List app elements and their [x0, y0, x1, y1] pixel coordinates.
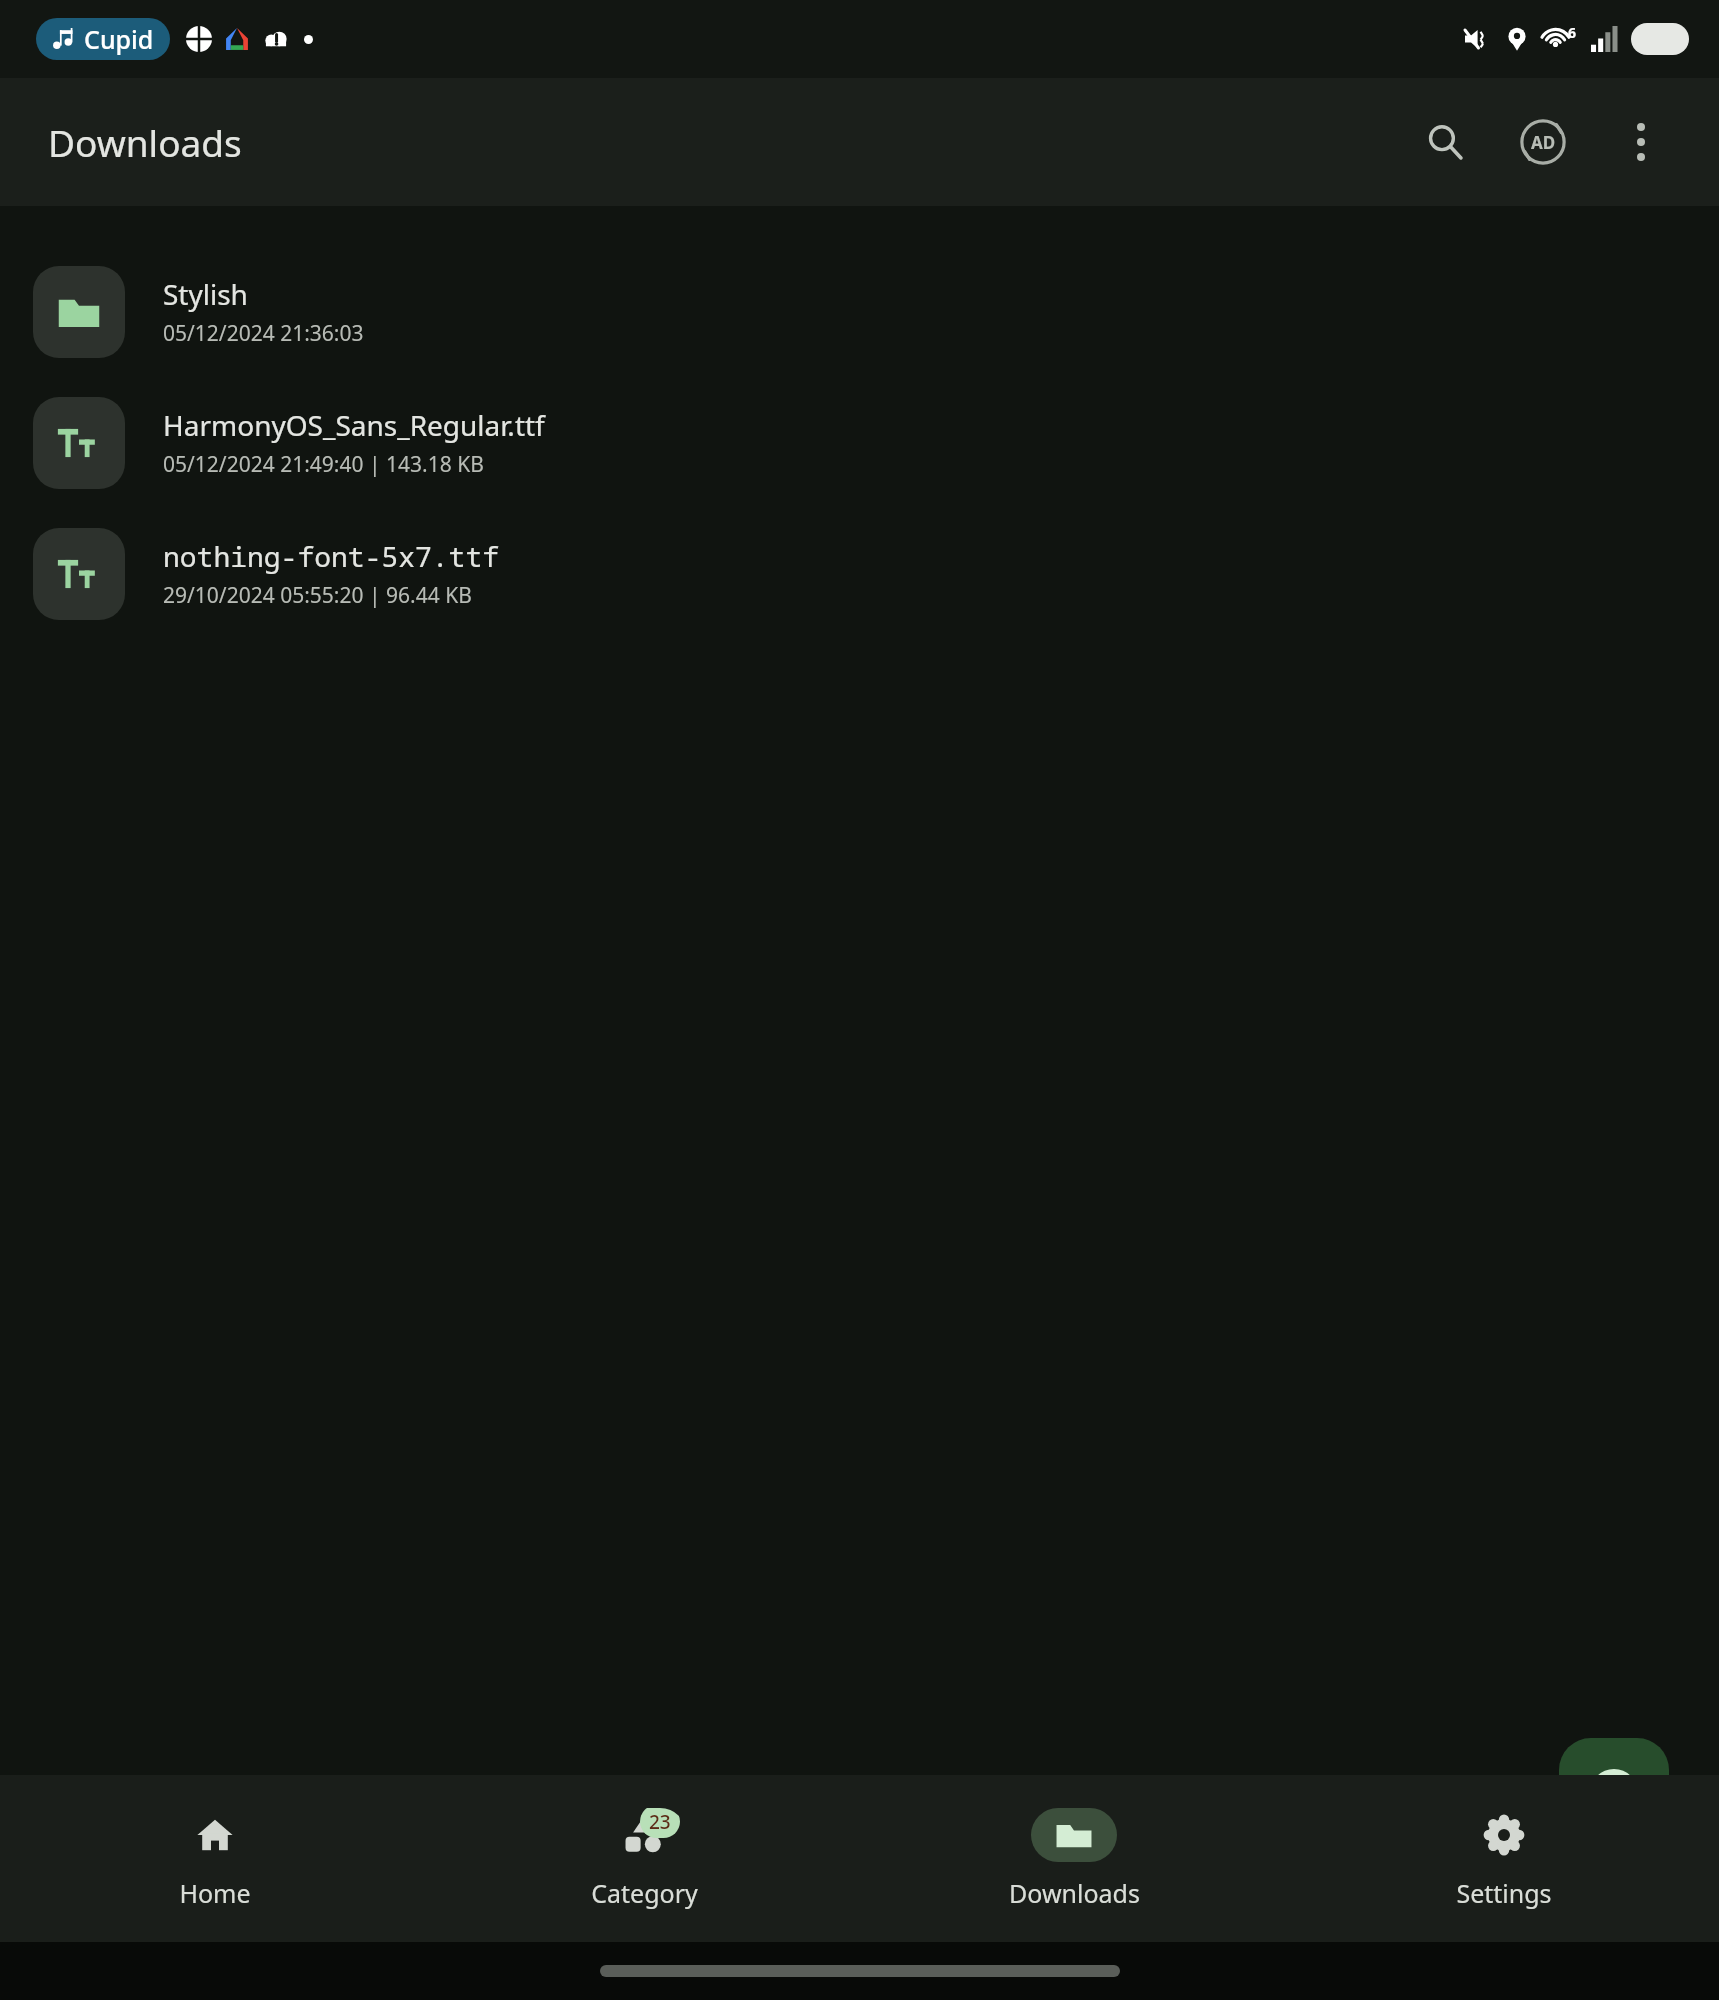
- button[interactable]: Search: [1407, 104, 1483, 180]
- staticText: 29/10/2024 05:55:20 | 96.44 KB: [163, 581, 472, 610]
- staticText: 23: [649, 1809, 671, 1835]
- button[interactable]: 23: [429, 1775, 859, 1942]
- staticText: AD: [1531, 131, 1556, 154]
- button[interactable]: Stylish: [0, 246, 1719, 377]
- staticText: Cupid: [84, 22, 154, 56]
- staticText: HarmonyOS_Sans_Regular.ttf: [163, 406, 545, 444]
- staticText: nothing-font-5x7.ttf: [163, 537, 500, 575]
- button[interactable]: Downloads: [859, 1775, 1289, 1942]
- staticText: Stylish: [163, 275, 248, 313]
- staticText: Category: [591, 1876, 698, 1910]
- staticText: Home: [179, 1876, 251, 1910]
- button[interactable]: nothing-font-5x7.ttf: [0, 508, 1719, 639]
- staticText: Downloads: [1009, 1876, 1140, 1910]
- staticText: Downloads: [48, 117, 242, 167]
- button[interactable]: HarmonyOS_Sans_Regular.ttf: [0, 377, 1719, 508]
- button[interactable]: Add: [1559, 1738, 1669, 1848]
- staticText: 05/12/2024 21:49:40 | 143.18 KB: [163, 450, 484, 479]
- button[interactable]: Home: [0, 1775, 429, 1942]
- button[interactable]: Settings: [1289, 1775, 1719, 1942]
- button[interactable]: More options: [1603, 104, 1679, 180]
- button[interactable]: Remove ads: [1505, 104, 1581, 180]
- staticText: 05/12/2024 21:36:03: [163, 319, 364, 348]
- staticText: Settings: [1456, 1876, 1552, 1910]
- staticText: 6: [1568, 23, 1577, 42]
